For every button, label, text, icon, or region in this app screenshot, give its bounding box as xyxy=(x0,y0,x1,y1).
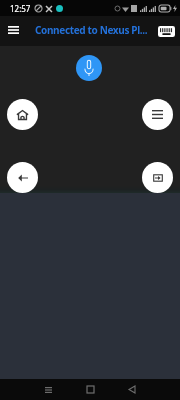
button[interactable]: Home xyxy=(7,99,38,130)
button[interactable]: Home xyxy=(69,379,111,400)
staticText: 12:57 xyxy=(10,3,31,14)
button[interactable]: Microphone xyxy=(76,55,102,81)
button[interactable]: Menu xyxy=(142,99,173,130)
button[interactable]: Recents xyxy=(27,379,69,400)
button[interactable]: Exit xyxy=(142,162,173,193)
button[interactable]: Back xyxy=(111,379,153,400)
staticText: Connected to Nexus Pl... xyxy=(35,23,148,37)
button[interactable]: Keyboard xyxy=(158,26,175,37)
button[interactable]: Back xyxy=(7,162,38,193)
button[interactable]: Open navigation menu xyxy=(0,17,26,43)
